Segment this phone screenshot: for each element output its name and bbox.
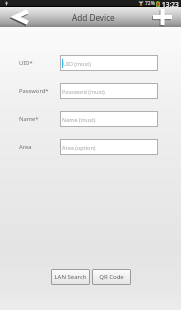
button[interactable]: Add: [148, 7, 177, 27]
staticText: Area: [19, 143, 32, 151]
button[interactable]: Name (must): [60, 111, 158, 127]
staticText: QR Code: [99, 273, 124, 281]
button[interactable]: QR Code: [92, 269, 131, 285]
staticText: Password*: [19, 87, 49, 95]
button[interactable]: Back: [0, 7, 37, 27]
staticText: UID*: [19, 59, 33, 67]
button[interactable]: LAN Search: [51, 269, 90, 285]
staticText: UID (must): [63, 60, 91, 67]
staticText: Name (must): [62, 116, 96, 123]
staticText: LAN Search: [54, 273, 87, 281]
button[interactable]: UID (must): [60, 55, 158, 71]
staticText: 72%: [145, 0, 155, 7]
button[interactable]: Password (must): [60, 83, 158, 99]
staticText: Name*: [19, 115, 39, 123]
staticText: Area (option): [62, 144, 96, 151]
staticText: Add Device: [72, 12, 115, 23]
staticText: 13:23: [162, 0, 179, 7]
staticText: Password (must): [62, 88, 105, 95]
button[interactable]: Area (option): [60, 139, 158, 155]
